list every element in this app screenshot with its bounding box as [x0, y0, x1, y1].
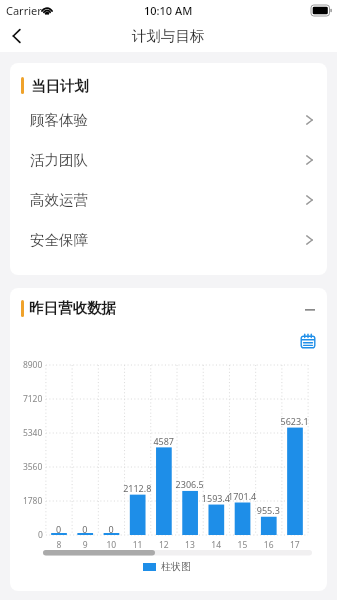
button[interactable]: Back	[0, 20, 34, 52]
button[interactable]: 高效运营	[10, 180, 327, 220]
button[interactable]: Collapse section	[299, 299, 321, 321]
button[interactable]: 顾客体验	[10, 100, 327, 140]
staticText: 10:10 AM	[144, 3, 193, 18]
staticText: 昨日营收数据	[29, 299, 116, 317]
staticText: 顾客体验	[30, 111, 88, 129]
staticText: 安全保障	[30, 231, 88, 249]
staticText: 当日计划	[31, 77, 89, 95]
button[interactable]: Open report list	[297, 330, 319, 352]
button[interactable]: 安全保障	[10, 220, 327, 260]
staticText: 计划与目标	[132, 27, 205, 45]
button[interactable]: 活力团队	[10, 140, 327, 180]
staticText: 活力团队	[30, 151, 88, 169]
staticText: 柱状图	[161, 560, 191, 573]
staticText: 高效运营	[30, 191, 88, 209]
staticText: Carrier	[6, 3, 42, 18]
